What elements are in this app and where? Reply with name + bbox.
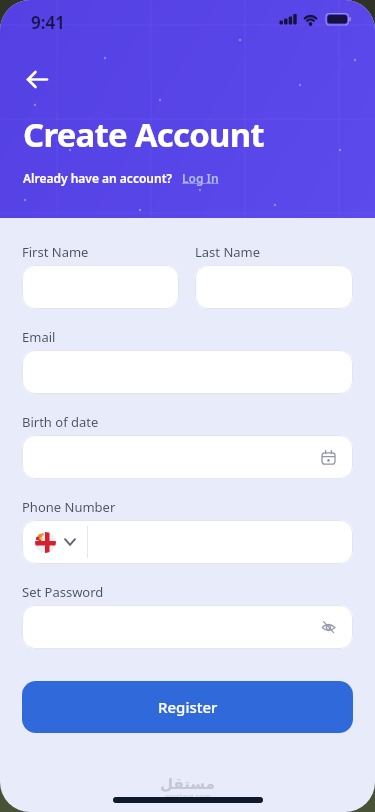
button[interactable] xyxy=(22,520,353,564)
staticText: First Name xyxy=(22,243,89,261)
button[interactable] xyxy=(22,605,353,649)
staticText: Phone Number xyxy=(22,498,116,516)
button[interactable] xyxy=(22,265,179,309)
staticText: Email xyxy=(22,328,56,346)
staticText: Register xyxy=(158,697,218,717)
button[interactable]: Log In xyxy=(182,170,219,186)
button[interactable] xyxy=(22,350,353,394)
staticText: 9:41 xyxy=(31,11,65,34)
button[interactable] xyxy=(20,62,54,96)
button[interactable] xyxy=(195,265,353,309)
button[interactable]: Register xyxy=(22,681,353,733)
button[interactable] xyxy=(22,435,353,479)
staticText: مستقل xyxy=(160,775,215,792)
staticText: Last Name xyxy=(195,243,261,261)
staticText: Already have an account? xyxy=(23,170,173,186)
staticText: Create Account xyxy=(23,112,264,157)
staticText: Set Password xyxy=(22,583,104,601)
staticText: mostaql.com xyxy=(165,792,211,802)
staticText: Birth of date xyxy=(22,413,99,431)
